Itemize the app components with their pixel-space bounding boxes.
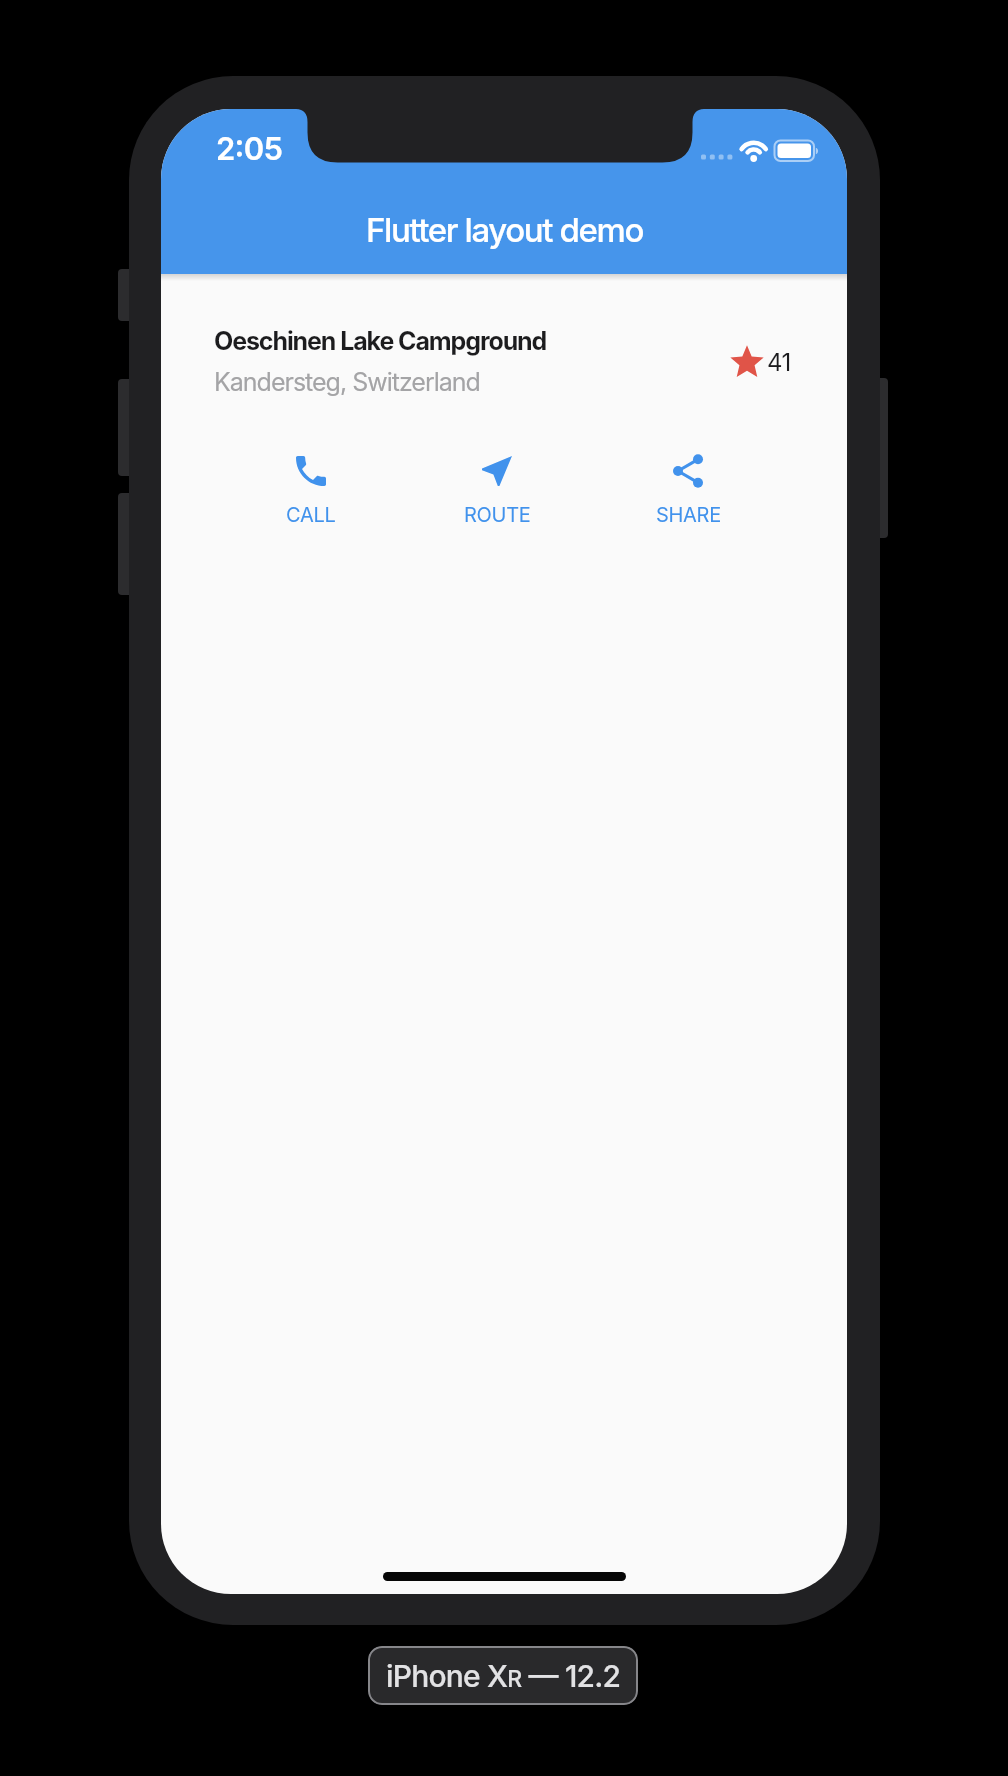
- staticText: CALL: [286, 503, 336, 527]
- button[interactable]: SHARE: [628, 444, 748, 534]
- staticText: Flutter layout demo: [366, 210, 643, 250]
- staticText: ROUTE: [464, 503, 531, 527]
- staticText: Kandersteg, Switzerland: [214, 367, 480, 397]
- staticText: 2:05: [216, 130, 283, 168]
- staticText: 41: [767, 348, 791, 377]
- staticText: SHARE: [656, 503, 721, 527]
- staticText: Oeschinen Lake Campground: [214, 326, 547, 356]
- staticText: iPhone XR — 12.2: [386, 1658, 621, 1694]
- button[interactable]: iPhone XR — 12.2: [368, 1646, 638, 1705]
- button[interactable]: ROUTE: [437, 444, 557, 534]
- button[interactable]: CALL: [251, 444, 371, 534]
